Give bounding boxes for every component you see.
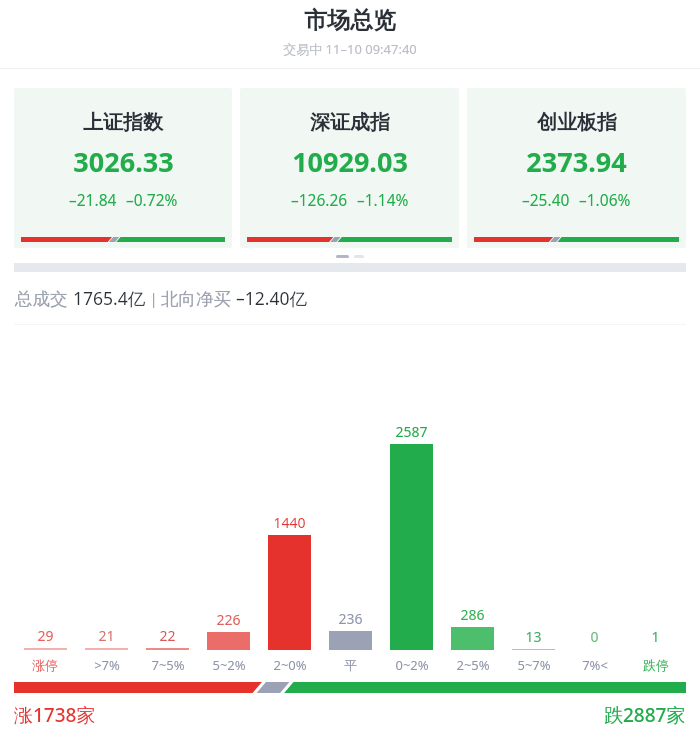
staticText: 创业板指: [537, 110, 617, 135]
staticText: 深证成指: [310, 110, 390, 135]
button[interactable]: 深证成指: [240, 88, 459, 248]
staticText: –1.14%: [357, 189, 409, 210]
staticText: 3026.33: [73, 143, 174, 180]
staticText: 1440: [273, 513, 306, 532]
staticText: 7%<: [582, 656, 608, 674]
staticText: –12.40亿: [236, 286, 307, 310]
staticText: 跌2887家: [604, 702, 686, 728]
button[interactable]: 1: [625, 627, 686, 650]
staticText: 29: [37, 626, 54, 645]
staticText: |: [146, 289, 161, 308]
button[interactable]: 0: [564, 627, 625, 650]
staticText: 10929.03: [292, 143, 408, 180]
staticText: 2373.94: [526, 143, 627, 180]
button[interactable]: 29: [14, 626, 76, 650]
staticText: 北向净买: [161, 286, 236, 310]
staticText: 21: [98, 626, 115, 645]
staticText: 平: [344, 657, 357, 673]
staticText: –126.26: [291, 189, 348, 210]
staticText: 286: [460, 605, 485, 624]
staticText: 总成交: [15, 286, 73, 310]
staticText: 1765.4亿: [73, 286, 146, 310]
staticText: >7%: [94, 656, 120, 674]
staticText: 2~5%: [456, 656, 490, 674]
staticText: 0: [590, 627, 599, 646]
staticText: 22: [159, 626, 176, 645]
staticText: 13: [525, 627, 542, 646]
staticText: 7~5%: [151, 656, 185, 674]
button[interactable]: 1440: [259, 513, 320, 650]
staticText: 2~0%: [273, 656, 307, 674]
staticText: 236: [338, 609, 363, 628]
staticText: –0.72%: [126, 189, 178, 210]
staticText: 跌停: [643, 657, 669, 673]
button[interactable]: 226: [198, 610, 259, 650]
staticText: –21.84: [69, 189, 117, 210]
staticText: 交易中 11–10 09:47:40: [283, 40, 417, 58]
button[interactable]: 13: [503, 627, 564, 650]
staticText: 5~2%: [212, 656, 246, 674]
button[interactable]: 21: [76, 626, 137, 650]
staticText: 涨停: [32, 657, 58, 673]
button[interactable]: 236: [320, 609, 381, 650]
button[interactable]: 286: [442, 605, 503, 650]
staticText: 5~7%: [517, 656, 551, 674]
staticText: –25.40: [522, 189, 570, 210]
staticText: 1: [651, 627, 660, 646]
button[interactable]: 上证指数: [14, 88, 232, 248]
staticText: 0~2%: [395, 656, 429, 674]
button[interactable]: 22: [137, 626, 198, 650]
staticText: 市场总览: [304, 6, 396, 35]
staticText: 2587: [395, 422, 428, 441]
button[interactable]: 2587: [381, 422, 442, 650]
staticText: 上证指数: [83, 110, 163, 135]
button[interactable]: 创业板指: [467, 88, 686, 248]
staticText: 涨1738家: [14, 702, 96, 728]
staticText: 226: [216, 610, 241, 629]
staticText: –1.06%: [579, 189, 631, 210]
